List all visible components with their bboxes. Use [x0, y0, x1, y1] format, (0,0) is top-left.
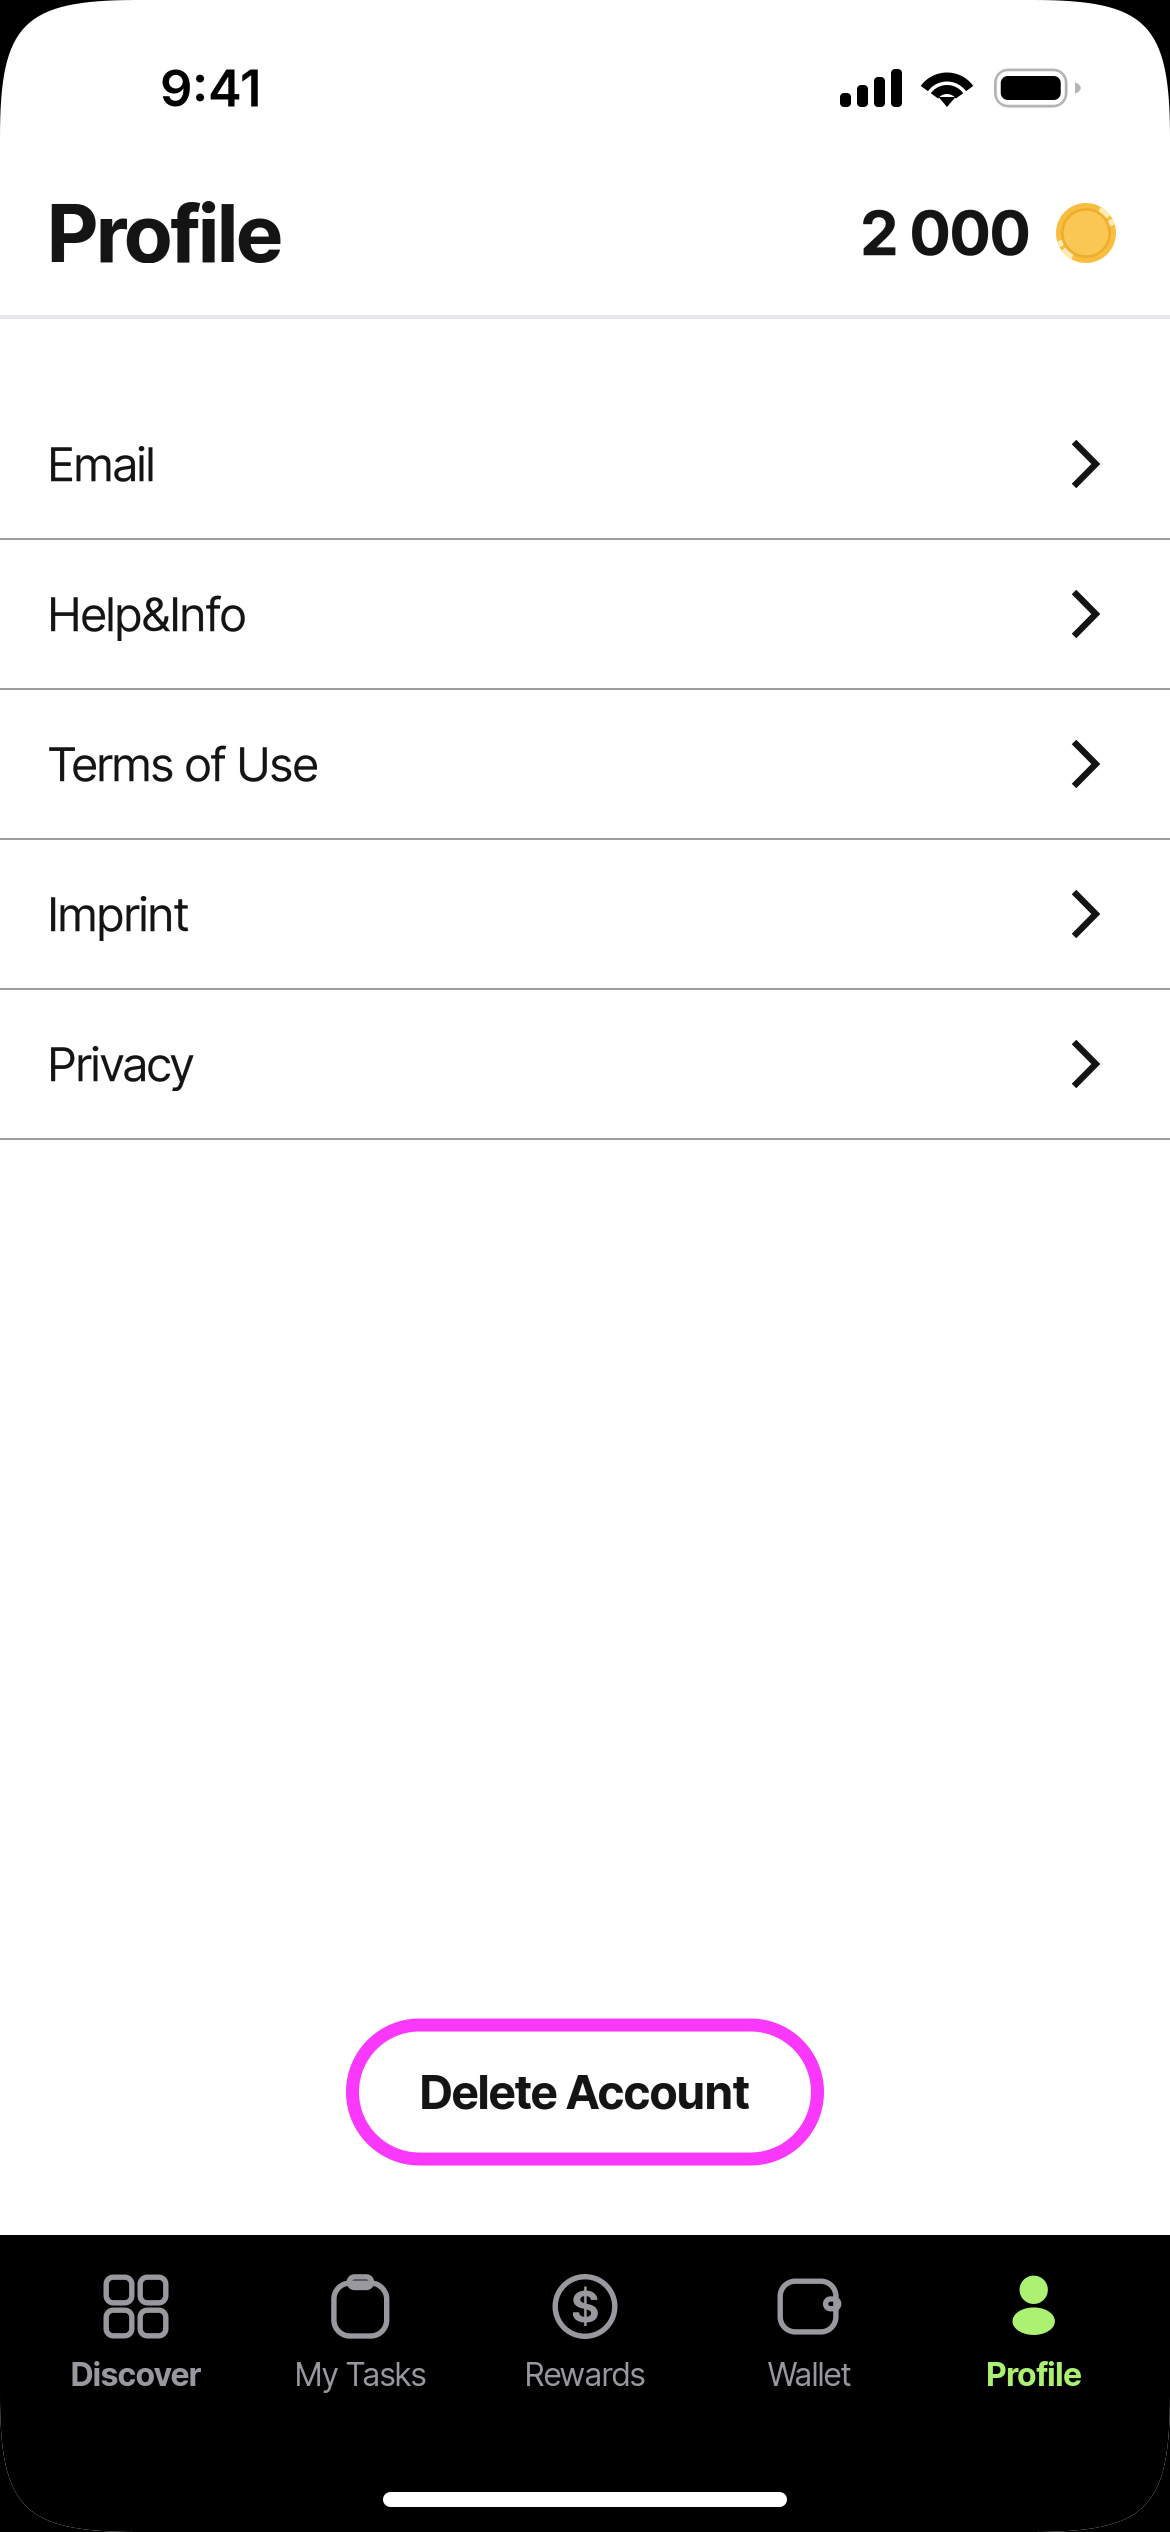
button[interactable]: Help&Info: [0, 540, 1170, 690]
staticText: Profile: [48, 185, 282, 281]
staticText: 9:41: [160, 57, 261, 119]
button[interactable]: Terms of Use: [0, 690, 1170, 840]
staticText: My Tasks: [295, 2355, 426, 2394]
button[interactable]: Privacy: [0, 990, 1170, 1140]
staticText: Email: [48, 435, 155, 493]
staticText: $: [571, 2280, 598, 2333]
button[interactable]: Delete Account: [352, 2025, 817, 2159]
staticText: Help&Info: [48, 585, 246, 643]
button[interactable]: Discover: [24, 2274, 248, 2409]
button[interactable]: Email: [0, 390, 1170, 540]
staticText: Privacy: [48, 1035, 194, 1093]
button[interactable]: Wallet: [697, 2274, 922, 2409]
button[interactable]: Imprint: [0, 840, 1170, 990]
button[interactable]: $: [473, 2274, 697, 2409]
staticText: Terms of Use: [48, 735, 318, 793]
button[interactable]: My Tasks: [248, 2274, 473, 2409]
button[interactable]: 2 000 coins: [861, 196, 1116, 270]
staticText: Discover: [71, 2355, 201, 2394]
staticText: Wallet: [768, 2355, 851, 2394]
staticText: Imprint: [48, 885, 189, 943]
button[interactable]: Profile: [922, 2274, 1146, 2409]
staticText: Profile: [986, 2355, 1081, 2394]
staticText: 2 000: [861, 196, 1030, 270]
staticText: Rewards: [525, 2355, 645, 2394]
staticText: Delete Account: [420, 2064, 750, 2120]
